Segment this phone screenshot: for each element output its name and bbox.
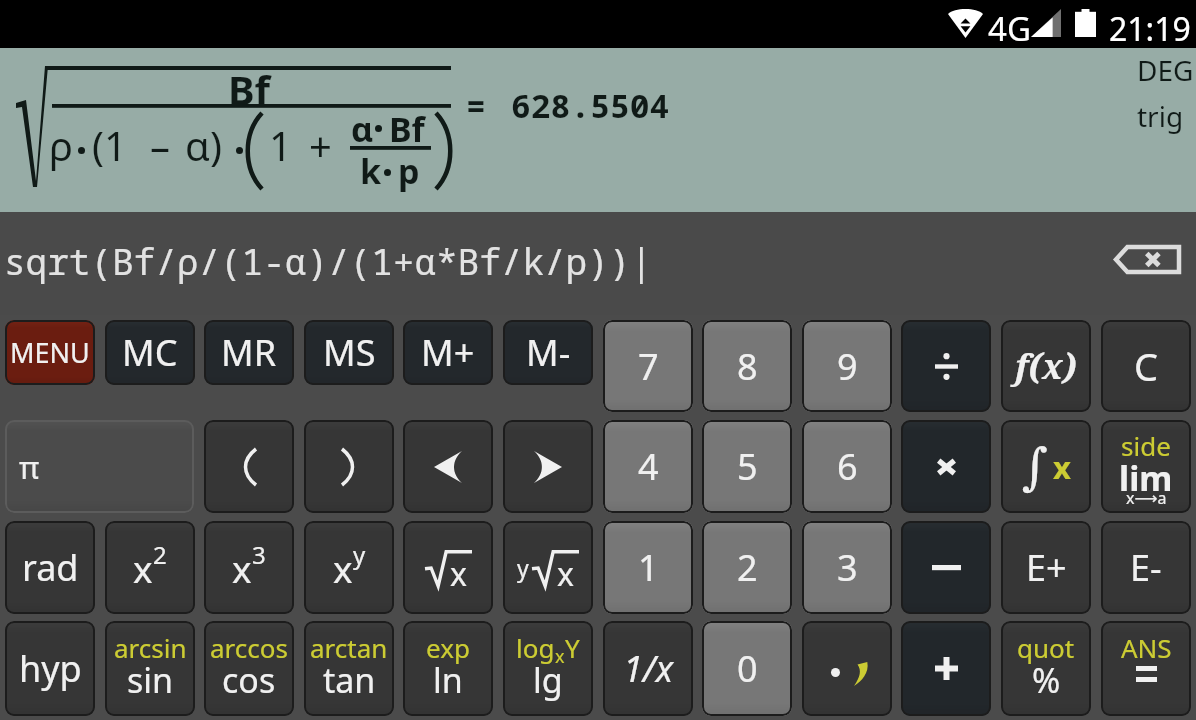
button[interactable]: x xyxy=(204,521,294,614)
button[interactable]: 5 xyxy=(702,420,792,513)
staticText: 8 xyxy=(737,342,758,391)
button[interactable]: π xyxy=(5,420,194,513)
staticText: 3 xyxy=(837,543,858,592)
button[interactable]: DEG xyxy=(1137,51,1194,89)
button[interactable]: arcsin xyxy=(105,621,195,716)
button[interactable]: Backspace xyxy=(1114,245,1181,274)
staticText: 1 xyxy=(269,118,292,172)
staticText: x xyxy=(133,543,153,593)
button[interactable] xyxy=(304,420,394,513)
staticText: x xyxy=(232,543,252,593)
button[interactable]: C xyxy=(1101,320,1191,412)
staticText: 2 xyxy=(737,543,758,592)
staticText: 628.5504 xyxy=(511,83,670,128)
button[interactable]: M- xyxy=(503,320,593,385)
button[interactable]: M+ xyxy=(403,320,493,385)
button[interactable]: MS xyxy=(304,320,394,385)
staticText: quot xyxy=(1017,630,1075,665)
staticText: y xyxy=(353,538,366,571)
button[interactable] xyxy=(901,420,991,513)
button[interactable] xyxy=(503,420,593,513)
button[interactable]: ANS xyxy=(1101,621,1191,716)
button[interactable]: hyp xyxy=(5,621,95,716)
button[interactable] xyxy=(901,320,991,412)
staticText: side xyxy=(1121,428,1171,463)
staticText: (1 xyxy=(92,118,127,172)
button[interactable]: 8 xyxy=(702,320,792,412)
button[interactable]: arctan xyxy=(304,621,394,716)
button[interactable]: x xyxy=(403,521,493,614)
button[interactable]: x xyxy=(105,521,195,614)
button[interactable]: 7 xyxy=(603,320,693,412)
button[interactable]: x xyxy=(304,521,394,614)
staticText: % xyxy=(1032,657,1061,703)
button[interactable] xyxy=(901,521,991,614)
staticText: α xyxy=(351,106,374,152)
staticText: 5 xyxy=(737,442,758,491)
staticText: k xyxy=(360,148,382,194)
staticText: sin xyxy=(127,657,174,703)
button[interactable] xyxy=(901,621,991,716)
staticText: – xyxy=(150,118,170,172)
staticText: x xyxy=(333,543,353,593)
staticText: π xyxy=(19,446,40,488)
button[interactable]: ∫ xyxy=(1001,420,1091,513)
button[interactable]: 6 xyxy=(802,420,892,513)
staticText: rad xyxy=(22,543,79,592)
staticText: p xyxy=(398,148,420,194)
button[interactable] xyxy=(802,621,892,716)
staticText: 0 xyxy=(737,644,758,693)
button[interactable]: f(x) xyxy=(1001,320,1091,412)
staticText: arccos xyxy=(210,630,288,665)
button[interactable]: 4 xyxy=(603,420,693,513)
staticText: E+ xyxy=(1026,543,1067,592)
button[interactable]: arccos xyxy=(204,621,294,716)
staticText: = xyxy=(466,83,486,128)
staticText: log xyxy=(516,630,555,665)
staticText: MENU xyxy=(10,334,90,371)
button[interactable]: 0 xyxy=(702,621,792,716)
button[interactable]: 3 xyxy=(802,521,892,614)
staticText: 3 xyxy=(252,538,266,571)
staticText: M- xyxy=(526,328,571,377)
staticText: lg xyxy=(533,657,563,703)
button[interactable]: MC xyxy=(105,320,195,385)
staticText: x xyxy=(450,552,467,588)
button[interactable]: E- xyxy=(1101,521,1191,614)
staticText: 2 xyxy=(153,538,167,571)
staticText: 21:19 xyxy=(1109,7,1191,51)
button[interactable] xyxy=(204,420,294,513)
staticText: cos xyxy=(222,657,276,703)
staticText: ∫ xyxy=(1022,438,1049,496)
button[interactable]: MENU xyxy=(5,320,95,385)
staticText: 1/x xyxy=(623,644,674,693)
staticText: M+ xyxy=(421,328,475,377)
button[interactable]: side xyxy=(1101,420,1191,513)
staticText: ρ xyxy=(49,118,73,172)
button[interactable]: MR xyxy=(204,320,294,385)
staticText: x xyxy=(555,644,565,669)
staticText: y xyxy=(517,552,529,583)
staticText: + xyxy=(309,118,332,172)
staticText: 1 xyxy=(638,543,659,592)
button[interactable]: 9 xyxy=(802,320,892,412)
button[interactable]: y xyxy=(503,521,593,614)
button[interactable]: 1 xyxy=(603,521,693,614)
button[interactable]: E+ xyxy=(1001,521,1091,614)
button[interactable]: log xyxy=(503,621,593,716)
button[interactable]: quot xyxy=(1001,621,1091,716)
staticText: ANS xyxy=(1121,630,1172,665)
button[interactable]: exp xyxy=(403,621,493,716)
button[interactable]: trig xyxy=(1137,97,1184,135)
button[interactable]: rad xyxy=(5,521,95,614)
staticText: MS xyxy=(323,328,376,377)
button[interactable]: 2 xyxy=(702,521,792,614)
staticText: arcsin xyxy=(114,630,187,665)
staticText: C xyxy=(1134,340,1159,392)
staticText: 7 xyxy=(638,342,659,391)
staticText: Bf xyxy=(228,62,271,116)
staticText: x⟶a xyxy=(1126,487,1167,509)
button[interactable] xyxy=(403,420,493,513)
staticText: 6 xyxy=(837,442,858,491)
button[interactable]: 1/x xyxy=(603,621,693,716)
